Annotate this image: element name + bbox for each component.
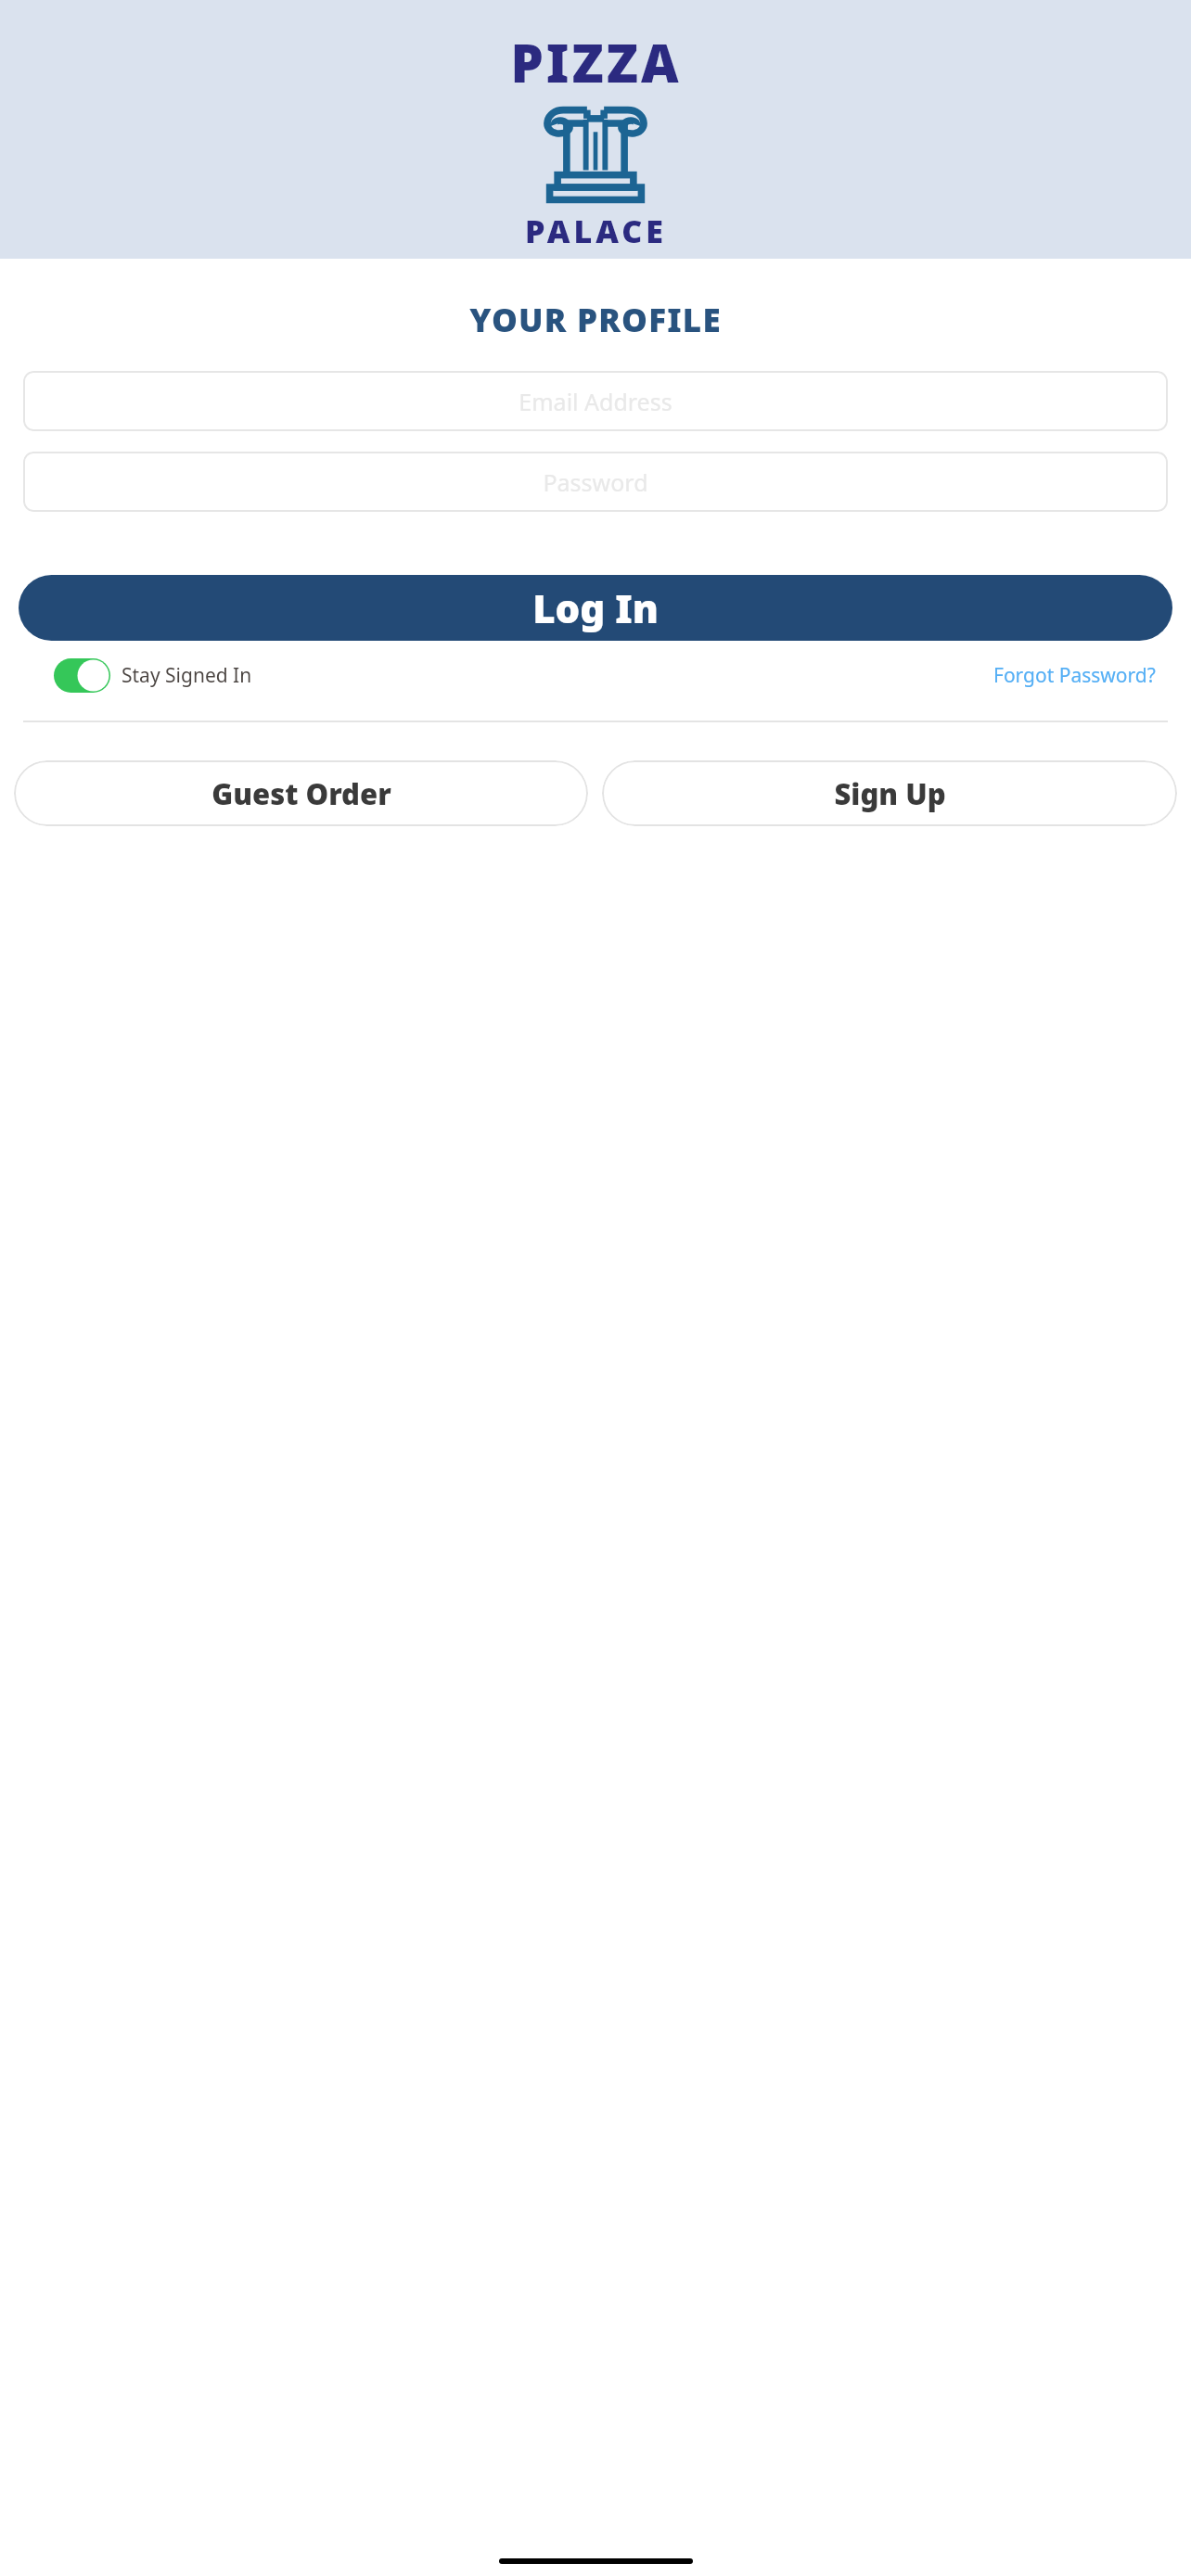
- staticText: PALACE: [525, 210, 667, 252]
- button[interactable]: Sign Up: [602, 760, 1177, 826]
- staticText: Stay Signed In: [122, 662, 252, 689]
- button[interactable]: Log In: [19, 575, 1172, 641]
- button[interactable]: Email Address: [23, 371, 1168, 431]
- staticText: Forgot Password?: [993, 662, 1156, 689]
- staticText: PIZZA: [510, 27, 682, 97]
- staticText: Sign Up: [834, 774, 946, 813]
- staticText: Email Address: [519, 386, 672, 417]
- staticText: Guest Order: [211, 774, 391, 813]
- button[interactable]: Password: [23, 452, 1168, 512]
- button[interactable]: Forgot Password?: [993, 662, 1156, 689]
- staticText: Log In: [532, 581, 659, 634]
- button[interactable]: Stay Signed In toggle, on: [54, 658, 252, 693]
- other: Stay Signed In toggle, on: [54, 658, 110, 693]
- button[interactable]: Guest Order: [14, 760, 588, 826]
- staticText: YOUR PROFILE: [0, 298, 1191, 342]
- staticText: Password: [543, 466, 648, 498]
